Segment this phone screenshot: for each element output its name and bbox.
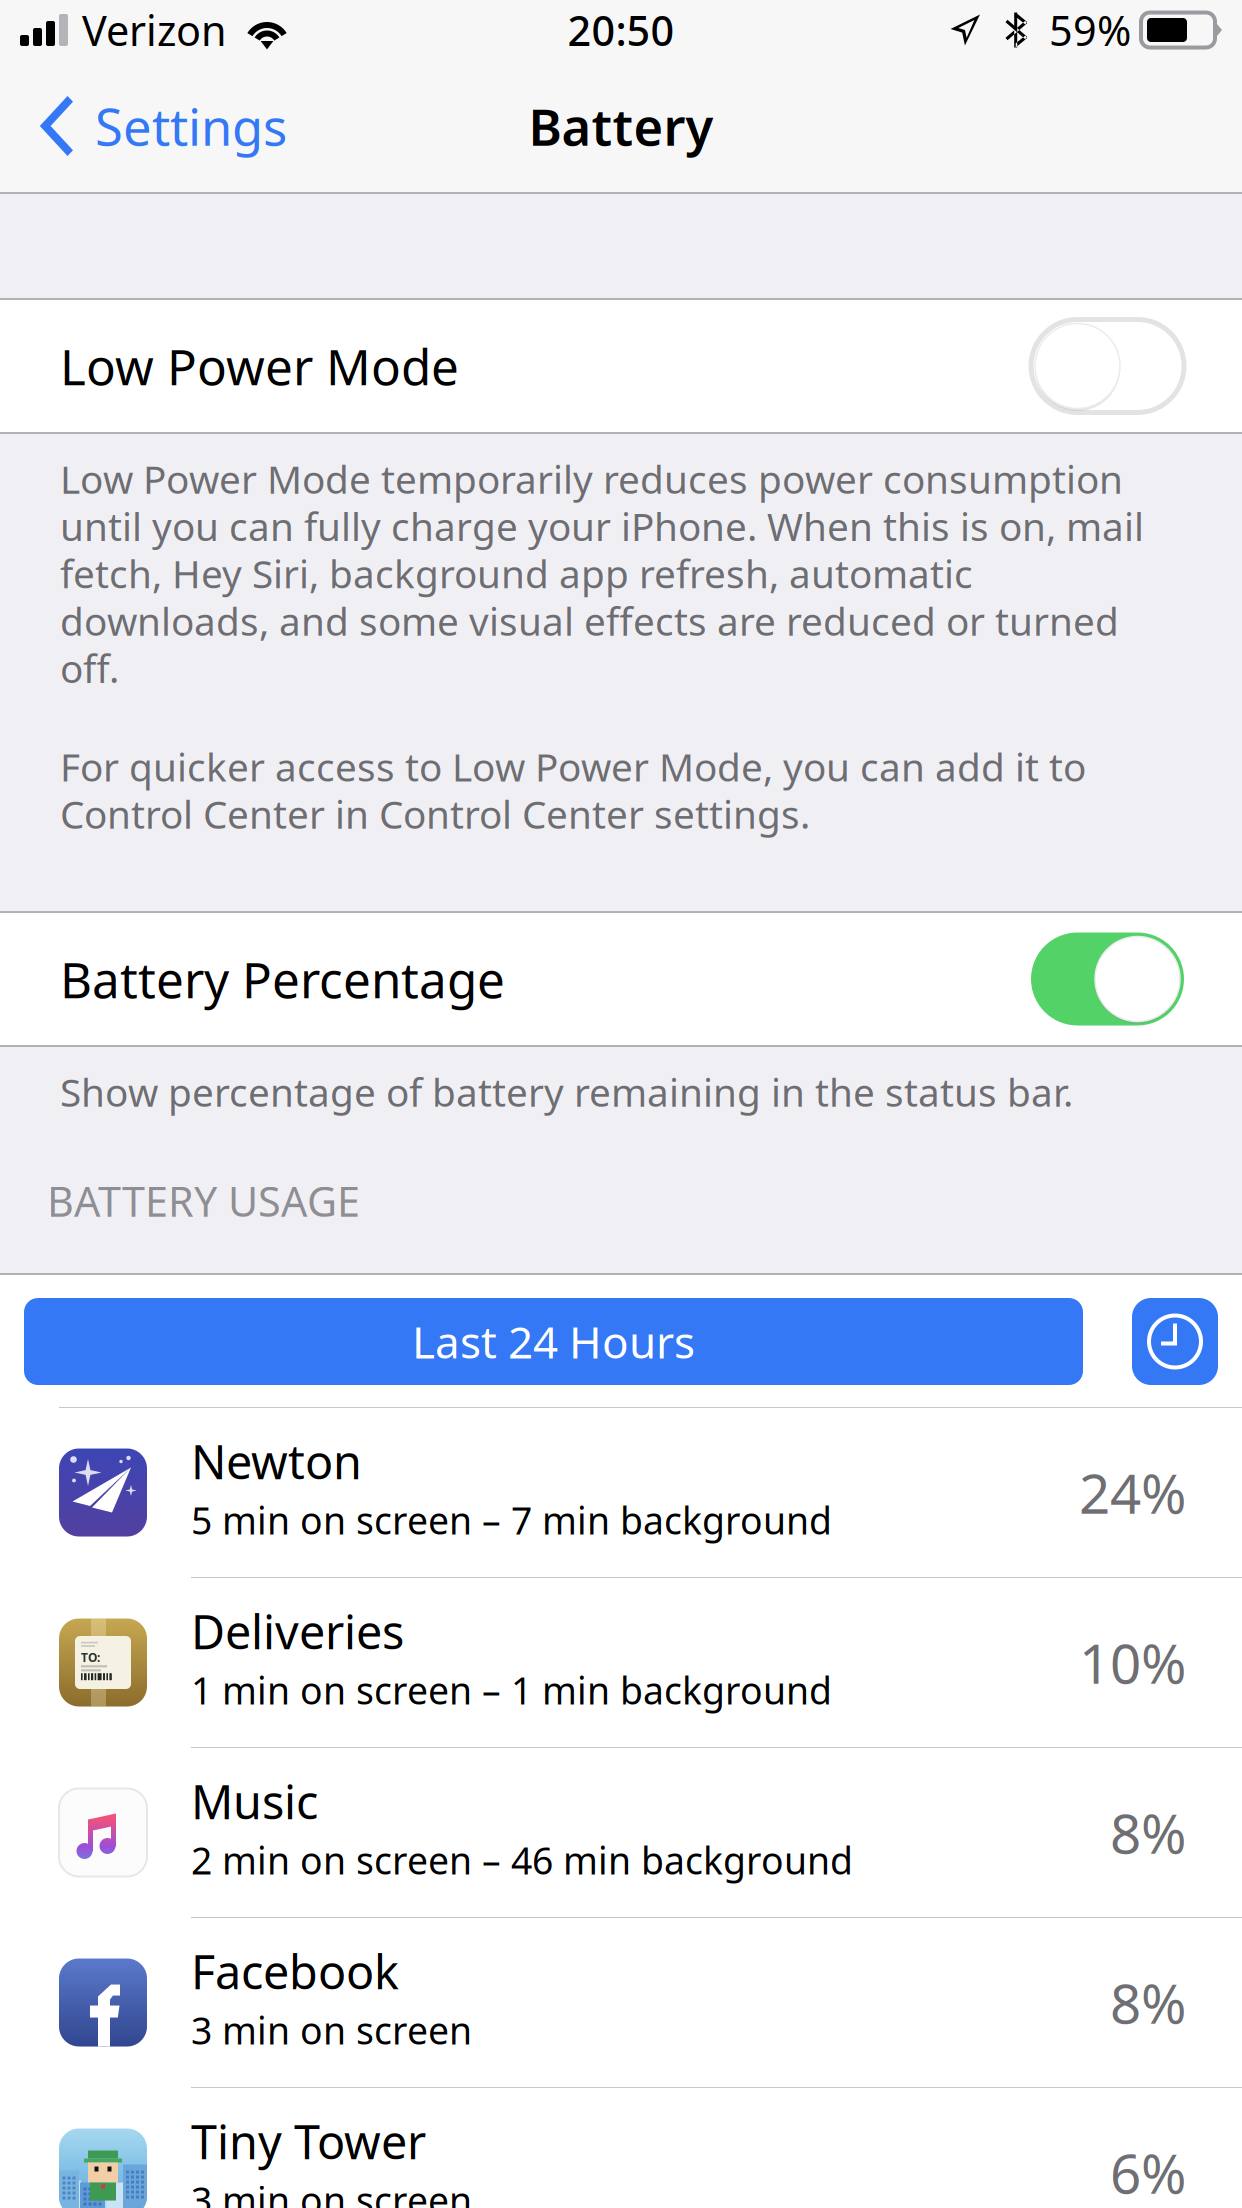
staticText: Settings — [95, 92, 287, 160]
button[interactable]: Tiny Tower — [0, 2088, 1242, 2208]
staticText: 8% — [1110, 1966, 1186, 2039]
button[interactable]: Battery Percentage, on — [1031, 932, 1184, 1025]
staticText: Show percentage of battery remaining in … — [60, 1066, 1073, 1117]
button[interactable]: Show battery usage by time — [1132, 1298, 1218, 1385]
staticText: Newton — [191, 1430, 362, 1492]
staticText: Battery Percentage — [60, 946, 505, 1012]
staticText: 1 min on screen – 1 min background — [191, 1665, 832, 1715]
button[interactable]: Low Power Mode, off — [1031, 319, 1184, 412]
staticText: Battery — [528, 92, 713, 160]
staticText: 5 min on screen – 7 min background — [191, 1495, 832, 1545]
staticText: 6% — [1110, 2136, 1186, 2208]
staticText: Low Power Mode — [60, 333, 459, 399]
staticText: 20:50 — [567, 3, 674, 57]
staticText: Facebook — [191, 1940, 399, 2002]
staticText: Music — [191, 1770, 318, 1832]
staticText: Tiny Tower — [191, 2110, 426, 2172]
button[interactable]: Facebook — [0, 1918, 1242, 2088]
staticText: Verizon — [82, 3, 227, 57]
staticText: 2 min on screen – 46 min background — [191, 1835, 853, 1885]
button[interactable]: Music — [0, 1748, 1242, 1918]
staticText: 8% — [1110, 1796, 1186, 1869]
staticText: Last 24 Hours — [412, 1312, 695, 1371]
staticText: For quicker access to Low Power Mode, yo… — [60, 741, 1086, 839]
staticText: Low Power Mode temporarily reduces power… — [60, 453, 1144, 694]
staticText: Deliveries — [191, 1600, 404, 1662]
staticText: BATTERY USAGE — [47, 1173, 360, 1228]
staticText: 3 min on screen — [191, 2175, 472, 2208]
staticText: TO: — [81, 1649, 100, 1665]
staticText: 3 min on screen — [191, 2005, 472, 2055]
button[interactable]: Newton — [0, 1408, 1242, 1578]
staticText: 10% — [1079, 1626, 1186, 1699]
button[interactable]: Last 24 Hours — [24, 1298, 1083, 1385]
staticText: 59% — [1049, 3, 1131, 57]
staticText: 24% — [1079, 1456, 1186, 1529]
button[interactable]: TO: — [0, 1578, 1242, 1748]
button[interactable]: Settings — [0, 77, 287, 175]
